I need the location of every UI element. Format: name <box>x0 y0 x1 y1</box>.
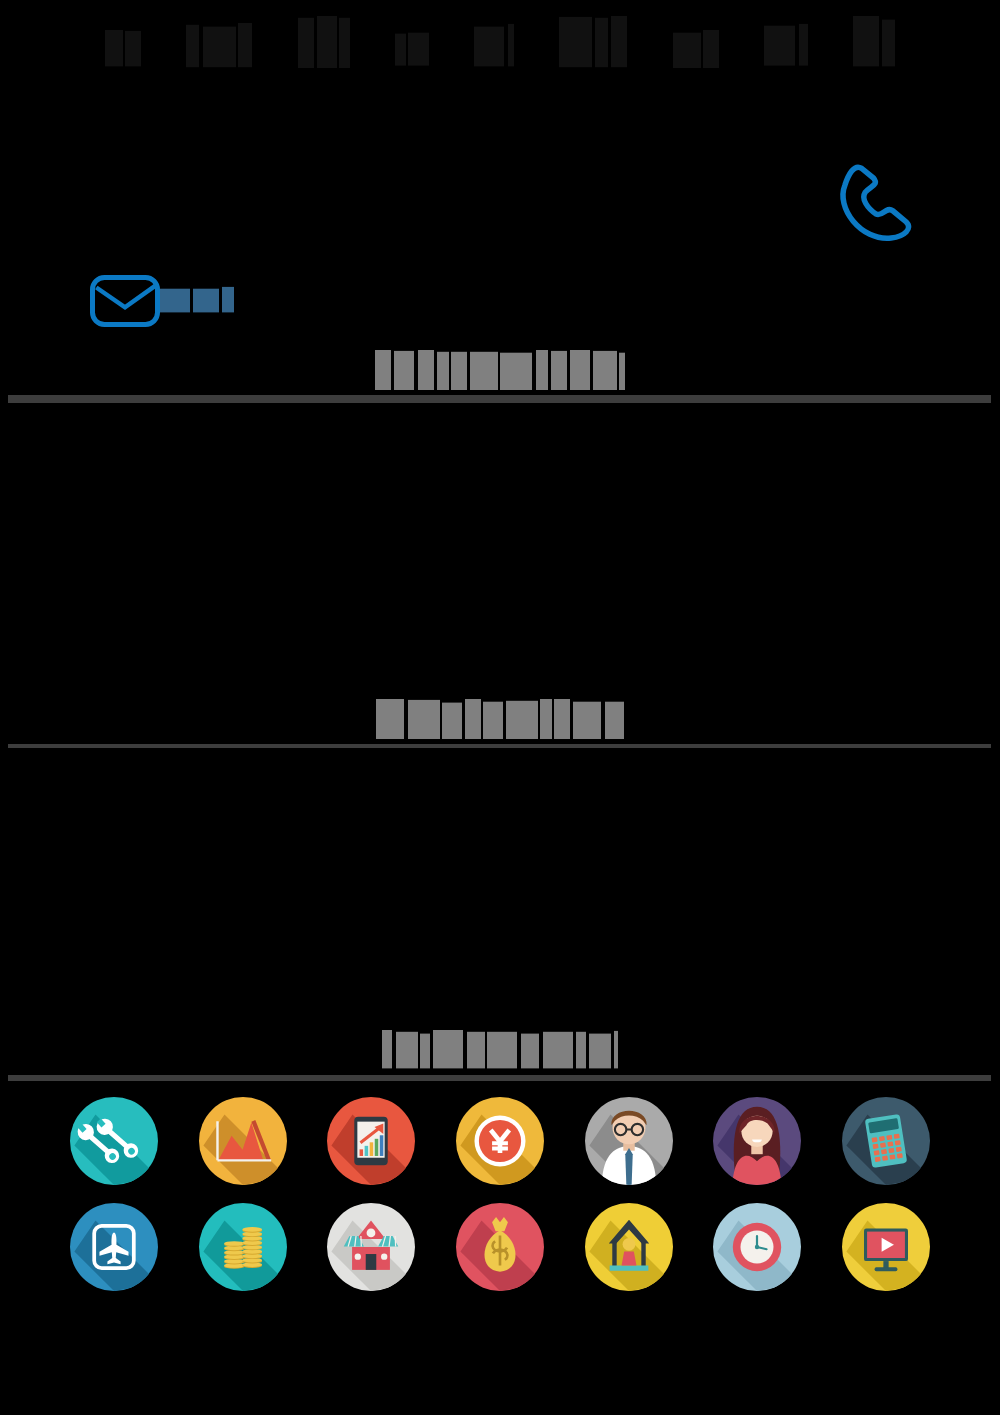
button[interactable]: Family <box>585 1203 673 1291</box>
button[interactable]: Reports <box>327 1097 415 1185</box>
button[interactable]: Calculator <box>842 1097 930 1185</box>
button[interactable]: Advisor <box>585 1097 673 1185</box>
button[interactable]: Funds <box>456 1203 544 1291</box>
button[interactable]: Media <box>842 1203 930 1291</box>
button[interactable]: Travel <box>70 1203 158 1291</box>
button[interactable]: Tools <box>70 1097 158 1185</box>
button[interactable]: Schedule <box>713 1203 801 1291</box>
button[interactable]: Email <box>90 275 160 327</box>
button[interactable]: Statistics <box>199 1097 287 1185</box>
button[interactable]: Currency <box>456 1097 544 1185</box>
button[interactable]: Store <box>327 1203 415 1291</box>
button[interactable]: Call <box>834 166 918 246</box>
button[interactable]: Savings <box>199 1203 287 1291</box>
button[interactable]: Customer <box>713 1097 801 1185</box>
